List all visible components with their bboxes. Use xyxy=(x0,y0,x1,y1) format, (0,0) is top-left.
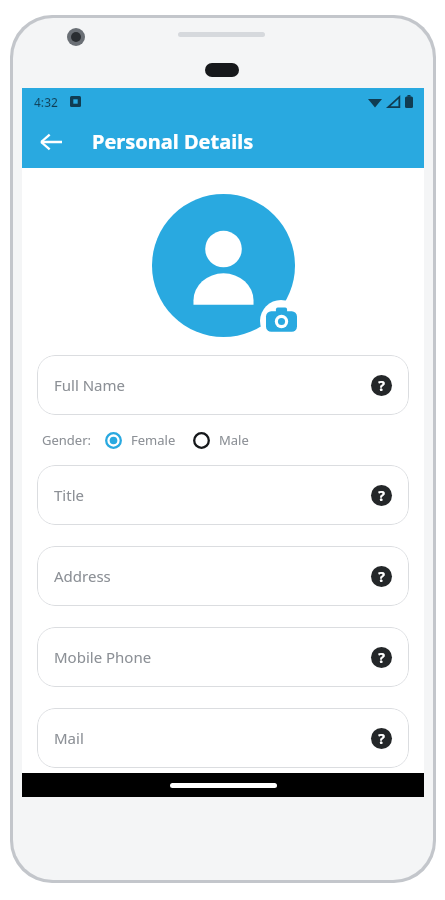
staticText: ? xyxy=(378,648,385,667)
button[interactable]: Female xyxy=(105,431,176,449)
staticText: ? xyxy=(378,567,385,586)
button[interactable]: Home xyxy=(170,783,277,788)
button[interactable]: Change profile photo xyxy=(152,194,295,337)
staticText: ? xyxy=(378,729,385,748)
button[interactable]: Back xyxy=(29,120,73,164)
button[interactable]: Mobile Phone xyxy=(37,627,409,687)
staticText: Mail xyxy=(54,728,371,748)
button[interactable]: Help about Full Name xyxy=(371,375,392,396)
staticText: ? xyxy=(378,376,385,395)
button[interactable]: Mail xyxy=(37,708,409,768)
staticText: 4:32 xyxy=(34,94,58,110)
staticText: Mobile Phone xyxy=(54,647,371,667)
button[interactable]: Help about Title xyxy=(371,485,392,506)
staticText: ? xyxy=(378,486,385,505)
staticText: Title xyxy=(54,485,371,505)
staticText: Gender: xyxy=(42,431,92,449)
staticText: Full Name xyxy=(54,375,371,395)
staticText: Address xyxy=(54,566,371,586)
button[interactable]: Help about Mail xyxy=(371,728,392,749)
staticText: Female xyxy=(131,431,176,449)
button[interactable]: Help about Mobile Phone xyxy=(371,647,392,668)
button[interactable]: Full Name xyxy=(37,355,409,415)
staticText: Personal Details xyxy=(92,128,254,155)
button[interactable]: Help about Address xyxy=(371,566,392,587)
button[interactable]: Title xyxy=(37,465,409,525)
staticText: Male xyxy=(219,431,249,449)
button[interactable]: Address xyxy=(37,546,409,606)
button[interactable]: Male xyxy=(193,431,249,449)
